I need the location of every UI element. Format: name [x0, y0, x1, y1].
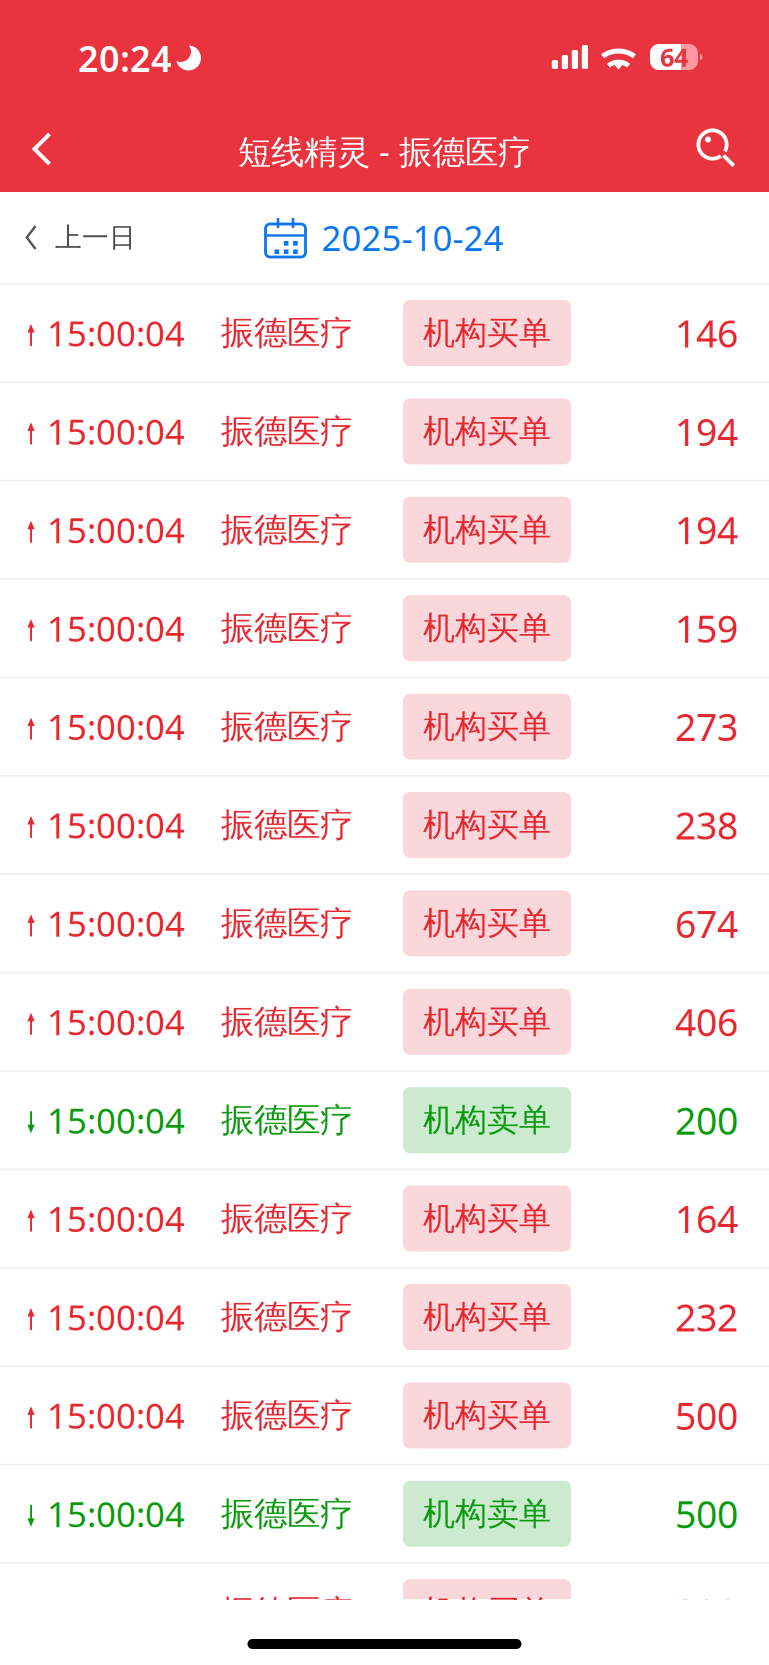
staticText: 2025-10-24 — [321, 214, 503, 260]
staticText: 15:00:04 — [47, 1491, 185, 1537]
staticText: 振德医疗 — [221, 1296, 353, 1337]
staticText: 15:00:04 — [47, 900, 185, 946]
staticText: 164 — [675, 1194, 738, 1243]
button[interactable]: Back — [0, 110, 78, 192]
staticText: 159 — [675, 603, 738, 653]
button[interactable]: 15:00:04 — [0, 285, 769, 381]
button[interactable]: 15:00:04 — [0, 383, 769, 480]
staticText: 机构卖单 — [423, 1494, 551, 1533]
button[interactable]: 15:00:04 — [0, 580, 769, 677]
staticText: 200 — [675, 1095, 738, 1145]
staticText: 振德医疗 — [221, 903, 353, 944]
staticText: 674 — [675, 899, 738, 948]
staticText: 振德医疗 — [221, 1100, 353, 1141]
staticText: 15:00:04 — [47, 1392, 185, 1438]
staticText: 短线精灵 - 振德医疗 — [238, 129, 531, 173]
staticText: 194 — [675, 505, 738, 555]
button[interactable]: 15:00:04 — [0, 1170, 769, 1267]
staticText: 500 — [675, 1489, 738, 1539]
staticText: 15:00:04 — [47, 999, 185, 1045]
staticText: 146 — [675, 308, 738, 358]
staticText: 机构买单 — [423, 412, 551, 451]
staticText: 振德医疗 — [221, 312, 353, 353]
button[interactable]: 15:00:04 — [0, 1269, 769, 1365]
staticText: 15:00:04 — [47, 1196, 185, 1242]
staticText: 15:00:04 — [47, 408, 185, 454]
staticText: 机构卖单 — [423, 1100, 551, 1140]
staticText: 振德医疗 — [221, 1493, 353, 1534]
staticText: 机构买单 — [423, 904, 551, 943]
staticText: 194 — [675, 407, 738, 456]
staticText: 15:00:04 — [47, 605, 185, 651]
button[interactable]: 15:00:04 — [0, 777, 769, 873]
button[interactable]: 15:00:04 — [0, 1072, 769, 1169]
staticText: 振德医疗 — [221, 1592, 353, 1633]
staticText: 机构买单 — [423, 1396, 551, 1435]
staticText: 机构买单 — [423, 510, 551, 549]
staticText: 振德医疗 — [221, 804, 353, 845]
staticText: 273 — [675, 702, 738, 751]
staticText: 振德医疗 — [221, 1395, 353, 1436]
staticText: 20:24 — [78, 34, 172, 82]
staticText: 机构买单 — [423, 1592, 551, 1632]
staticText: 振德医疗 — [221, 509, 353, 550]
button[interactable]: 2025-10-24 — [265, 192, 503, 283]
button[interactable]: 15:00:04 — [0, 678, 769, 775]
button[interactable]: 15:00:04 — [0, 1564, 769, 1661]
staticText: 238 — [675, 800, 738, 850]
staticText: 上一日 — [55, 221, 136, 254]
staticText: 15:00:04 — [47, 1294, 185, 1340]
staticText: 振德医疗 — [221, 706, 353, 747]
staticText: 15:00:04 — [47, 802, 185, 848]
staticText: 振德医疗 — [221, 411, 353, 452]
staticText: 机构买单 — [423, 1297, 551, 1337]
staticText: 机构买单 — [423, 313, 551, 353]
staticText: 振德医疗 — [221, 1198, 353, 1239]
staticText: 64 — [660, 40, 688, 74]
button[interactable]: 15:00:04 — [0, 973, 769, 1070]
staticText: 406 — [675, 997, 738, 1047]
staticText: 机构买单 — [423, 805, 551, 845]
staticText: 15:00:04 — [47, 704, 185, 750]
button[interactable]: 15:00:04 — [0, 1465, 769, 1562]
button[interactable]: 15:00:04 — [0, 875, 769, 972]
staticText: 机构买单 — [423, 1199, 551, 1238]
staticText: 振德医疗 — [221, 608, 353, 649]
staticText: 232 — [675, 1292, 738, 1342]
staticText: 500 — [675, 1391, 738, 1440]
staticText: 15:00:04 — [47, 1097, 185, 1143]
staticText: 振德医疗 — [221, 1001, 353, 1042]
staticText: 机构买单 — [423, 1002, 551, 1041]
staticText: 机构买单 — [423, 707, 551, 746]
button[interactable]: 15:00:04 — [0, 481, 769, 578]
staticText: 机构买单 — [423, 608, 551, 648]
button[interactable]: 15:00:04 — [0, 1367, 769, 1464]
button[interactable]: 上一日 — [0, 192, 158, 283]
staticText: 15:00:04 — [47, 507, 185, 553]
staticText: 15:00:04 — [47, 310, 185, 356]
button[interactable]: Search — [680, 110, 769, 192]
